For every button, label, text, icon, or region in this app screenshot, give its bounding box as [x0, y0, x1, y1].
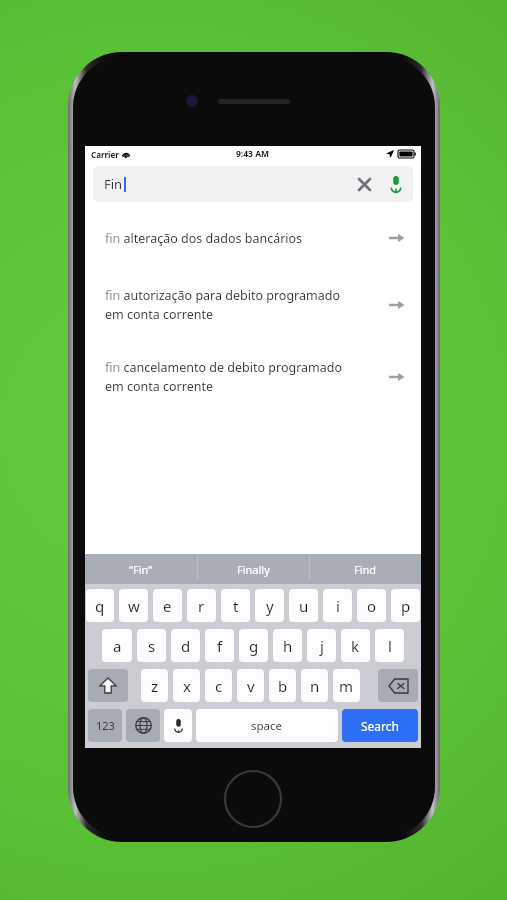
button[interactable]: fin alteração dos dados bancários [85, 212, 421, 264]
button[interactable]: 123 [88, 709, 122, 742]
staticText: w [128, 596, 140, 616]
button[interactable]: Clear text [349, 169, 379, 199]
staticText: Carrier [91, 149, 119, 160]
staticText: fin cancelamento de debito programado [105, 359, 343, 376]
button[interactable]: fin autorização para debito programado [85, 274, 421, 336]
staticText: g [249, 636, 259, 656]
staticText: y [266, 596, 274, 616]
staticText: z [151, 676, 159, 696]
other: Use suggestion [383, 224, 411, 252]
staticText: t [233, 596, 239, 616]
staticText: m [339, 676, 354, 696]
staticText: f [217, 636, 223, 656]
staticText: 9:43 AM [236, 148, 270, 160]
staticText: “Fin” [129, 562, 153, 577]
staticText: space [251, 718, 283, 734]
button[interactable]: q [86, 589, 114, 622]
button[interactable]: Finally [198, 554, 309, 584]
button[interactable]: fin cancelamento de debito programado [85, 346, 421, 408]
other: Use suggestion [383, 363, 411, 391]
staticText: em conta corrente [105, 378, 214, 395]
button[interactable]: e [153, 589, 182, 622]
button[interactable]: o [357, 589, 386, 622]
button[interactable]: v [237, 669, 264, 702]
button[interactable]: space [196, 709, 338, 742]
other: Use suggestion [383, 291, 411, 319]
staticText: j [320, 636, 324, 656]
staticText: Search [361, 718, 399, 734]
button[interactable]: l [375, 629, 404, 662]
staticText: fin autorização para debito programado [105, 287, 340, 304]
staticText: b [278, 676, 288, 696]
button[interactable]: Fin [93, 166, 413, 202]
staticText: d [181, 636, 191, 656]
button[interactable]: y [255, 589, 284, 622]
staticText: k [351, 636, 360, 656]
button[interactable]: a [102, 629, 132, 662]
button[interactable]: f [205, 629, 234, 662]
button[interactable]: Search [342, 709, 418, 742]
button[interactable]: Change keyboard [126, 709, 160, 742]
button[interactable]: x [173, 669, 200, 702]
staticText: v [247, 676, 255, 696]
staticText: r [198, 596, 205, 616]
button[interactable]: h [273, 629, 302, 662]
staticText: fin alteração dos dados bancários [105, 230, 303, 247]
staticText: Finally [237, 562, 270, 577]
button[interactable]: u [289, 589, 318, 622]
staticText: x [183, 676, 191, 696]
button[interactable]: r [187, 589, 216, 622]
staticText: n [310, 676, 320, 696]
button[interactable]: m [333, 669, 360, 702]
staticText: u [299, 596, 309, 616]
button[interactable]: b [269, 669, 296, 702]
button[interactable]: Find [310, 554, 421, 584]
staticText: c [215, 676, 223, 696]
button[interactable]: p [391, 589, 420, 622]
staticText: Find [354, 562, 377, 577]
staticText: p [401, 596, 411, 616]
button[interactable]: d [171, 629, 200, 662]
staticText: o [367, 596, 377, 616]
button[interactable]: i [323, 589, 352, 622]
button[interactable]: g [239, 629, 268, 662]
staticText: 123 [96, 718, 115, 733]
button[interactable]: w [119, 589, 148, 622]
staticText: em conta corrente [105, 306, 214, 323]
staticText: a [113, 636, 122, 656]
button[interactable]: j [307, 629, 336, 662]
button[interactable]: c [205, 669, 232, 702]
staticText: h [283, 636, 293, 656]
button[interactable]: Dictate [164, 709, 192, 742]
button[interactable]: t [221, 589, 250, 622]
button[interactable]: k [341, 629, 370, 662]
button[interactable]: Shift [88, 669, 128, 702]
button[interactable]: z [141, 669, 168, 702]
staticText: q [95, 596, 105, 616]
staticText: l [388, 636, 392, 656]
button[interactable]: s [137, 629, 166, 662]
button[interactable]: “Fin” [85, 554, 197, 584]
button[interactable]: Voice search [379, 167, 413, 201]
button[interactable]: n [301, 669, 328, 702]
staticText: s [148, 636, 156, 656]
button[interactable]: Backspace [378, 669, 418, 702]
staticText: Fin [104, 175, 123, 193]
staticText: e [163, 596, 172, 616]
staticText: i [336, 596, 340, 616]
